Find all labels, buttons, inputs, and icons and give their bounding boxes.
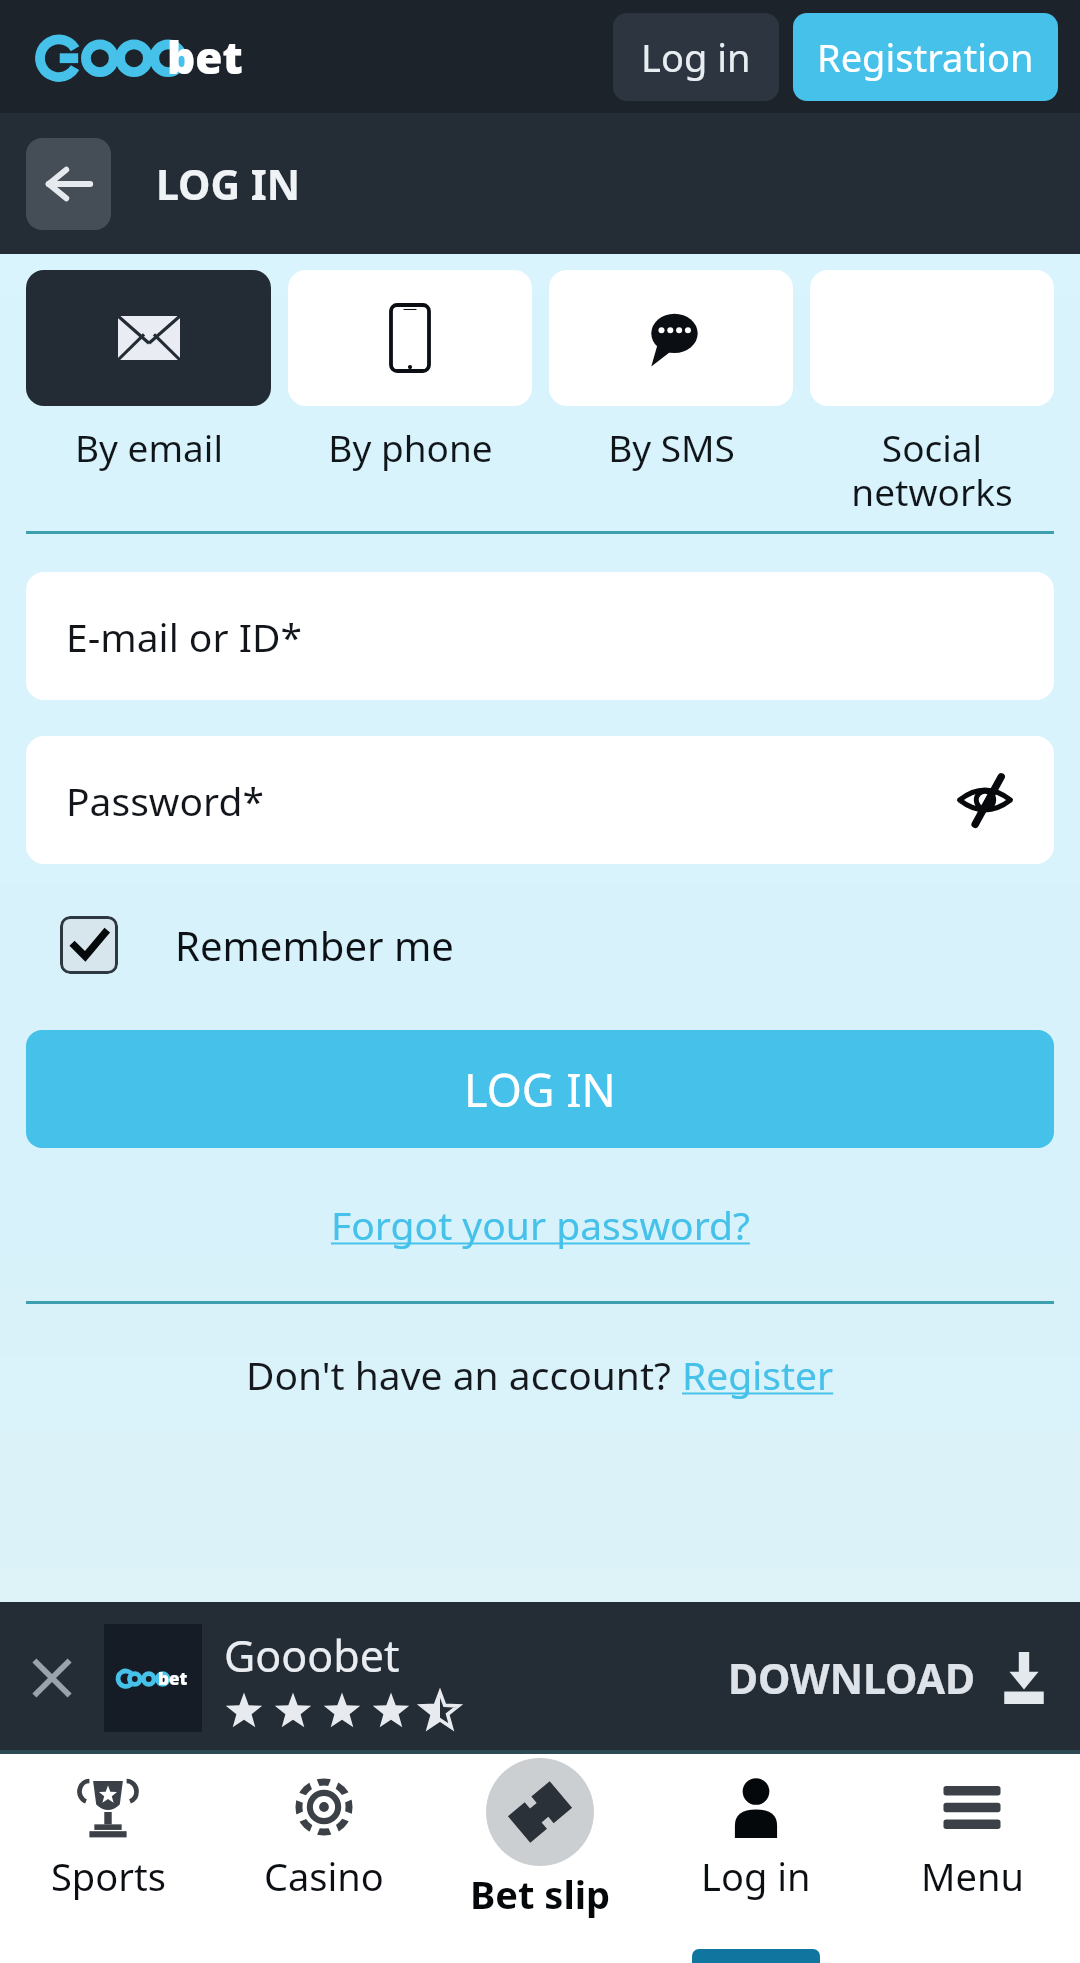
staticText: LOG IN xyxy=(464,1059,616,1120)
staticText: Don't have an account? xyxy=(246,1348,682,1401)
staticText: By SMS xyxy=(608,422,735,472)
staticText: Remember me xyxy=(175,918,454,972)
staticText: Log in xyxy=(701,1850,811,1902)
button[interactable]: Close xyxy=(0,1602,104,1754)
button[interactable]: Register xyxy=(682,1348,834,1401)
button[interactable]: Bet slip xyxy=(432,1754,648,1963)
staticText: LOG IN xyxy=(156,156,301,212)
button[interactable]: Close xyxy=(0,1602,1080,1754)
button[interactable]: Menu xyxy=(864,1754,1080,1963)
button[interactable]: Show password xyxy=(950,765,1020,835)
button[interactable]: Sports xyxy=(0,1754,216,1963)
staticText: Registration xyxy=(817,31,1034,83)
staticText: Menu xyxy=(921,1850,1024,1902)
staticText: E-mail or ID* xyxy=(66,610,302,663)
button[interactable]: Forgot your password? xyxy=(331,1198,750,1251)
button[interactable]: Password* xyxy=(26,736,1054,864)
button[interactable]: By email xyxy=(26,270,271,472)
button[interactable]: By SMS xyxy=(549,270,793,472)
button[interactable]: Social networks xyxy=(810,270,1054,517)
staticText: Register xyxy=(682,1348,834,1401)
button[interactable]: Log in xyxy=(648,1754,864,1963)
staticText: Casino xyxy=(264,1850,384,1902)
button[interactable]: Log in xyxy=(613,13,779,101)
button[interactable]: Back xyxy=(26,138,111,230)
staticText: Sports xyxy=(51,1850,166,1902)
button[interactable]: LOG IN xyxy=(26,1030,1054,1148)
staticText: Log in xyxy=(641,31,751,83)
staticText: By email xyxy=(75,422,223,472)
staticText: Social networks xyxy=(851,422,1013,517)
staticText: bet xyxy=(167,27,243,87)
staticText: Password* xyxy=(66,774,264,827)
button[interactable]: By phone xyxy=(288,270,532,472)
staticText: DOWNLOAD xyxy=(728,1650,976,1706)
staticText: Bet slip xyxy=(470,1868,611,1920)
button[interactable]: Remember me xyxy=(60,916,454,974)
staticText: By phone xyxy=(328,422,493,472)
staticText: Gooobet xyxy=(224,1626,400,1685)
button[interactable]: Casino xyxy=(216,1754,432,1963)
staticText: Forgot your password? xyxy=(331,1198,750,1251)
button[interactable]: E-mail or ID* xyxy=(26,572,1054,700)
staticText: bet xyxy=(158,1667,188,1690)
button[interactable]: DOWNLOAD xyxy=(728,1650,1080,1706)
button[interactable]: Registration xyxy=(793,13,1058,101)
